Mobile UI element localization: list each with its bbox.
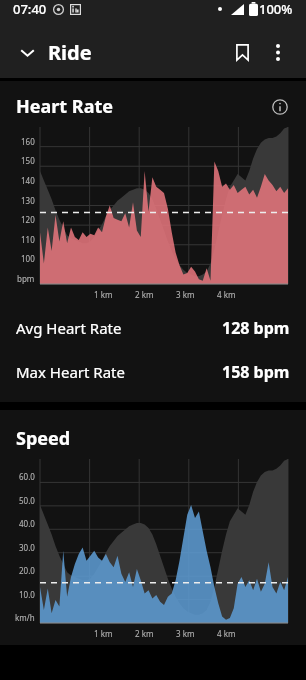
button[interactable]: Avg Heart Rate bbox=[0, 306, 306, 350]
staticText: 60.0 bbox=[19, 471, 35, 482]
staticText: 100 bbox=[21, 253, 35, 264]
staticText: 30.0 bbox=[19, 542, 35, 553]
staticText: 1 km bbox=[94, 628, 113, 639]
button[interactable]: Max Heart Rate bbox=[0, 350, 306, 394]
staticText: 100% bbox=[259, 0, 293, 18]
staticText: Speed bbox=[16, 426, 71, 451]
staticText: 160 bbox=[21, 136, 35, 147]
staticText: 40.0 bbox=[19, 518, 35, 529]
staticText: 3 km bbox=[176, 289, 195, 300]
button[interactable]: More options bbox=[260, 34, 296, 70]
staticText: km/h bbox=[15, 612, 35, 623]
staticText: 07:40 bbox=[13, 0, 47, 18]
staticText: 128 bpm bbox=[222, 317, 290, 339]
staticText: 2 km bbox=[135, 289, 154, 300]
staticText: 4 km bbox=[217, 289, 236, 300]
staticText: 158 bpm bbox=[222, 361, 290, 383]
staticText: bpm bbox=[17, 273, 35, 284]
button[interactable]: Collapse bbox=[10, 35, 44, 69]
staticText: Heart Rate bbox=[16, 94, 113, 119]
staticText: 150 bbox=[21, 155, 35, 166]
button[interactable]: Info bbox=[268, 95, 292, 119]
staticText: 50.0 bbox=[19, 495, 35, 506]
staticText: 10.0 bbox=[19, 589, 35, 600]
staticText: 110 bbox=[21, 234, 35, 245]
button[interactable]: Bookmark bbox=[224, 34, 260, 70]
staticText: 4 km bbox=[217, 628, 236, 639]
staticText: Max Heart Rate bbox=[16, 362, 125, 382]
staticText: 3 km bbox=[176, 628, 195, 639]
staticText: Ride bbox=[48, 39, 92, 66]
staticText: 140 bbox=[21, 175, 35, 186]
staticText: 2 km bbox=[135, 628, 154, 639]
staticText: 120 bbox=[21, 214, 35, 225]
staticText: 20.0 bbox=[19, 565, 35, 576]
staticText: Avg Heart Rate bbox=[16, 318, 122, 338]
staticText: 130 bbox=[21, 195, 35, 206]
staticText: 1 km bbox=[94, 289, 113, 300]
